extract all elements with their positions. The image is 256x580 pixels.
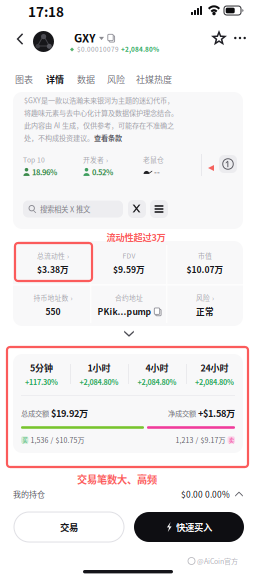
button[interactable]: 4小时 xyxy=(128,359,186,389)
button[interactable]: Favorite xyxy=(212,31,226,45)
staticText: 正常 xyxy=(196,305,214,317)
staticText: 5分钟 xyxy=(30,361,53,374)
staticText: PKik...pump xyxy=(97,305,151,317)
button[interactable]: 交易 xyxy=(14,512,124,542)
staticText: 18.96% xyxy=(32,166,57,177)
staticText: 风险 xyxy=(107,72,125,85)
staticText: +$1.58万 xyxy=(198,406,235,420)
button[interactable]: 快速买入 xyxy=(134,512,244,542)
staticText: 1,213 / $9.17万 xyxy=(175,435,227,445)
staticText: 流动性超过3万 xyxy=(106,230,165,244)
staticText: 买 xyxy=(22,436,27,444)
staticText: 开发者 › xyxy=(83,155,108,164)
staticText: GXY xyxy=(74,29,96,46)
staticText: $GXY是一款以浩瀚未来银河为主题的迷幻代币， xyxy=(24,95,174,105)
staticText: FDV xyxy=(122,251,135,260)
staticText: 17:18 xyxy=(28,1,64,21)
staticText: $9.59万 xyxy=(113,263,145,275)
staticText: 处，不构成投资建议。 xyxy=(24,133,94,143)
button[interactable]: 市值 xyxy=(167,248,243,278)
staticText: 24小时 xyxy=(200,361,228,374)
staticText: +117.30% xyxy=(25,377,58,387)
button[interactable]: 风险 xyxy=(101,68,131,90)
staticText: 持币地址数 › xyxy=(33,293,72,302)
button[interactable]: 持币地址数 › xyxy=(15,290,91,320)
staticText: 总成交额 xyxy=(21,408,51,418)
staticText: 风险 › xyxy=(196,293,214,302)
staticText: $3.38万 xyxy=(37,263,69,275)
button[interactable]: FDV xyxy=(91,248,167,278)
staticText: 合约地址 xyxy=(115,293,143,302)
staticText: 数据 xyxy=(77,72,95,85)
staticText: +2,084.80% xyxy=(79,377,118,387)
staticText: 社媒热度 xyxy=(136,72,172,85)
button[interactable]: Filter xyxy=(150,200,168,218)
button[interactable]: 图表 xyxy=(9,68,39,90)
staticText: 0.52% xyxy=(92,166,113,177)
staticText: $19.92万 xyxy=(51,406,88,420)
button[interactable]: Back xyxy=(12,26,28,52)
staticText: $0.00010079 xyxy=(77,44,119,54)
staticText: 交易 xyxy=(60,520,78,534)
button[interactable]: X xyxy=(128,200,146,218)
staticText: 将趣味元素与去中心化计算及数据保护理念结合。 xyxy=(24,108,178,118)
button[interactable]: 1小时 xyxy=(70,359,128,389)
staticText: $10.07万 xyxy=(186,263,223,275)
staticText: 总流动性 › xyxy=(37,251,69,260)
staticText: 卖 xyxy=(229,436,234,444)
staticText: 净成交额 xyxy=(168,408,198,418)
button[interactable]: 详情 xyxy=(39,68,71,90)
staticText: 我的持仓 xyxy=(13,488,45,500)
staticText: +2,084.80% xyxy=(195,377,234,387)
button[interactable]: 总流动性 › xyxy=(15,248,91,278)
button[interactable]: 数据 xyxy=(71,68,101,90)
staticText: @AiCoin官方 xyxy=(197,556,238,566)
staticText: -- xyxy=(154,166,160,177)
button[interactable]: 社媒热度 xyxy=(131,68,177,90)
staticText: 老鼠仓 xyxy=(143,155,164,164)
staticText: 搜索相关 X 推文 xyxy=(40,204,90,214)
button[interactable]: More xyxy=(233,31,247,45)
staticText: 此内容由 AI 生成，仅供参考，可能存在不准确之 xyxy=(24,120,174,130)
button[interactable]: 5分钟 xyxy=(13,359,70,389)
staticText: +2,084.80% xyxy=(121,44,159,54)
staticText: 交易笔数大、高频 xyxy=(77,472,157,486)
staticText: 550 xyxy=(45,305,60,317)
staticText: 图表 xyxy=(15,72,33,85)
button[interactable]: 风险 › xyxy=(167,290,243,320)
button[interactable]: Info xyxy=(219,155,237,173)
staticText: 1小时 xyxy=(87,361,110,374)
staticText: +2,084.80% xyxy=(137,377,176,387)
staticText: 市值 xyxy=(198,251,212,260)
staticText: 详情 xyxy=(46,72,64,85)
staticText: 4小时 xyxy=(145,361,168,374)
button[interactable]: 合约地址 xyxy=(91,290,167,320)
staticText: 1,536 / $10.75万 xyxy=(28,435,84,445)
button[interactable]: 24小时 xyxy=(186,359,243,389)
staticText: $0.00 0.00% xyxy=(181,488,230,500)
staticText: 查看条款 xyxy=(94,133,122,143)
staticText: Top 10 xyxy=(23,155,45,164)
staticText: 快速买入 xyxy=(176,520,212,534)
